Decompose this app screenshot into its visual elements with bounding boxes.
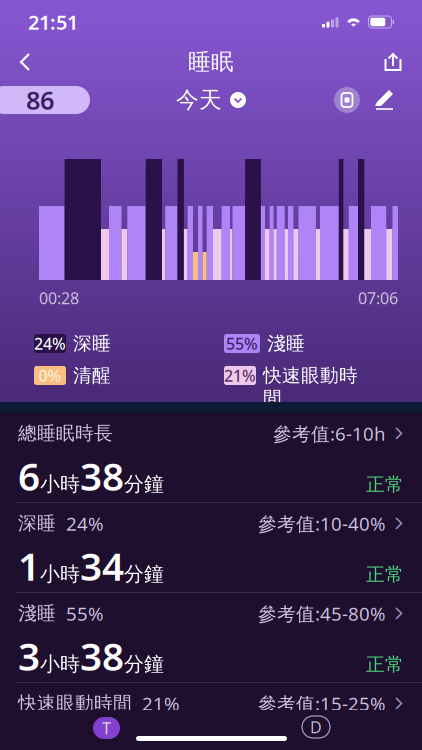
staticText: 小時 — [40, 472, 80, 496]
staticText: 55% — [226, 333, 258, 354]
button[interactable]: 86 — [0, 86, 90, 114]
button[interactable]: 快速眼動時間 — [0, 683, 422, 750]
staticText: T — [102, 717, 111, 739]
staticText: 正常 — [366, 563, 404, 586]
staticText: 清醒 — [73, 364, 111, 387]
staticText: 24% — [56, 511, 104, 536]
staticText: 38 — [80, 630, 124, 681]
staticText: 總睡眠時長 — [18, 422, 113, 445]
button[interactable]: 深睡 — [0, 503, 422, 593]
staticText: 26 — [80, 720, 124, 750]
staticText: 快速眼動時 間 — [263, 364, 358, 410]
staticText: 34 — [80, 540, 124, 591]
button[interactable]: Share — [374, 43, 412, 81]
staticText: 分鐘 — [124, 472, 164, 496]
staticText: 小時 — [40, 652, 80, 676]
staticText: 3 — [18, 630, 40, 681]
staticText: 21% — [132, 691, 180, 716]
staticText: 淺睡 — [18, 602, 56, 625]
staticText: 38 — [80, 450, 124, 501]
staticText: 07:06 — [358, 287, 398, 309]
staticText: 分鐘 — [124, 562, 164, 586]
button[interactable]: Back — [10, 43, 48, 81]
button[interactable]: 淺睡 — [0, 593, 422, 683]
staticText: 深睡 — [73, 332, 111, 355]
staticText: 淺睡 — [267, 332, 305, 355]
staticText: 21:51 — [28, 9, 78, 35]
staticText: 21% — [224, 365, 256, 386]
staticText: 睡眠 — [188, 48, 234, 76]
button[interactable]: 總睡眠時長 — [0, 413, 422, 503]
staticText: 分鐘 — [124, 652, 164, 676]
staticText: 參考值:6-10h — [273, 421, 386, 446]
staticText: 深睡 — [18, 512, 56, 535]
staticText: 快速眼動時間 — [18, 692, 132, 715]
staticText: 小時 — [40, 562, 80, 586]
staticText: 24% — [34, 333, 66, 354]
staticText: 0% — [38, 365, 61, 386]
staticText: 86 — [26, 83, 54, 117]
staticText: 參考值:10-40% — [258, 511, 386, 536]
staticText: D — [310, 716, 322, 738]
staticText: 6 — [18, 450, 40, 501]
button[interactable]: Device — [332, 85, 362, 115]
staticText: 55% — [56, 601, 104, 626]
staticText: 參考值:45-80% — [258, 601, 386, 626]
staticText: 正常 — [366, 473, 404, 496]
staticText: 1 — [18, 540, 40, 591]
staticText: 正常 — [366, 653, 404, 676]
button[interactable]: Edit — [362, 87, 408, 113]
staticText: 00:28 — [39, 287, 79, 309]
staticText: 今天 — [176, 86, 222, 114]
staticText: 參考值:15-25% — [258, 691, 386, 716]
